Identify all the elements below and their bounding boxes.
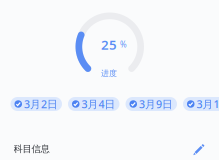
button[interactable]: 3月2日: [10, 97, 62, 111]
staticText: %: [120, 39, 127, 50]
staticText: 3月9日: [139, 97, 173, 111]
button[interactable]: 3月4日: [68, 97, 119, 111]
button[interactable]: Edit: [192, 142, 205, 155]
staticText: 科目信息: [13, 143, 49, 155]
staticText: 3月11日: [196, 97, 219, 111]
staticText: 25: [101, 36, 117, 53]
staticText: 3月4日: [81, 97, 115, 111]
button[interactable]: 3月9日: [125, 97, 177, 111]
staticText: 3月2日: [24, 97, 58, 111]
button[interactable]: 3月11日: [183, 97, 219, 111]
staticText: 进度: [101, 68, 117, 78]
